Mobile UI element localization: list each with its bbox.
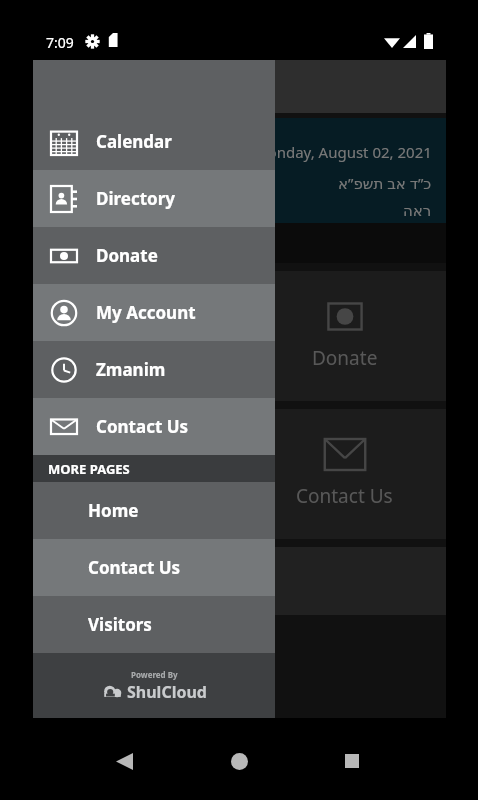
staticText: Monday, August 02, 2021	[254, 142, 432, 162]
staticText: Donate	[96, 244, 158, 267]
staticText: ראה	[403, 202, 432, 219]
staticText: ShulCloud	[127, 681, 207, 703]
staticText: Contact Us	[88, 556, 181, 579]
staticText: Visitors	[88, 613, 152, 636]
staticText: Directory	[93, 483, 175, 509]
button[interactable]: Donate	[33, 227, 275, 284]
button[interactable]: Contact Us	[33, 539, 275, 596]
button[interactable]: Directory	[33, 409, 235, 539]
staticText: 7:09	[46, 33, 74, 52]
staticText: Donate	[312, 345, 378, 371]
button[interactable]: Contact Us	[243, 409, 446, 539]
button[interactable]: More	[33, 547, 446, 615]
staticText: Zmanim	[96, 358, 166, 381]
staticText: MORE PAGES	[48, 460, 130, 478]
staticText: Calendar	[94, 345, 175, 371]
button[interactable]: Directory	[33, 170, 275, 227]
button[interactable]: Back	[106, 743, 142, 779]
button[interactable]: Home	[33, 482, 275, 539]
button[interactable]: Contact Us	[33, 398, 275, 455]
button[interactable]: Zmanim	[33, 341, 275, 398]
staticText: Calendar	[96, 130, 172, 153]
button[interactable]: Home	[221, 743, 257, 779]
staticText: Powered By	[131, 669, 178, 680]
button[interactable]: My Account	[33, 284, 275, 341]
button[interactable]: Visitors	[33, 596, 275, 653]
staticText: Directory	[96, 187, 176, 210]
button[interactable]: Donate	[243, 271, 446, 401]
button[interactable]: Calendar	[33, 271, 235, 401]
button[interactable]: Calendar	[33, 113, 275, 170]
staticText: My Account	[96, 301, 196, 324]
staticText: כ”ד אב תשפ”א	[338, 173, 432, 193]
button[interactable]: Recent apps	[334, 743, 370, 779]
staticText: Home	[88, 499, 139, 522]
staticText: Contact Us	[296, 483, 393, 509]
staticText: Contact Us	[96, 415, 189, 438]
